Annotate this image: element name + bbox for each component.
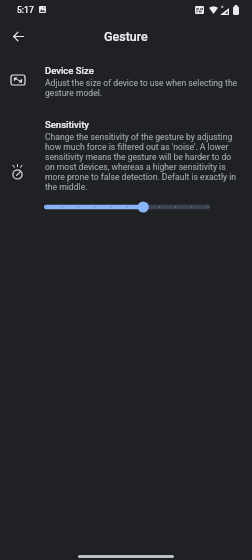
staticText: Adjust the size of device to use when se… [45, 78, 238, 98]
staticText: Device Size [45, 65, 94, 76]
button[interactable]: Sensitivity slider [0, 197, 252, 217]
button[interactable]: Navigate up [6, 24, 30, 48]
button[interactable]: Sensitivity [0, 119, 252, 192]
staticText: 5:17 [17, 5, 34, 15]
staticText: Sensitivity [45, 119, 89, 130]
staticText: Gesture [104, 29, 148, 44]
button[interactable]: Device Size [0, 65, 252, 98]
staticText: Change the sensitivity of the gesture by… [45, 132, 238, 192]
